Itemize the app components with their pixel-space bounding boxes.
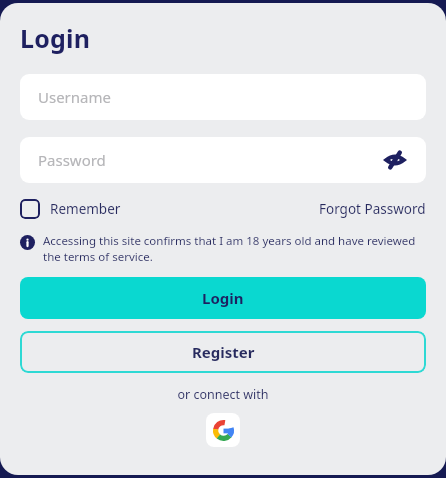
staticText: Login <box>20 21 91 55</box>
button[interactable]: Forgot Password <box>319 200 426 218</box>
button[interactable]: Register <box>20 331 426 373</box>
staticText: or connect with <box>20 386 426 403</box>
staticText: Login <box>202 288 244 308</box>
button[interactable]: Sign in with Google <box>206 413 240 447</box>
button[interactable]: Login <box>20 277 426 319</box>
staticText: Accessing this site confirms that I am 1… <box>43 233 426 264</box>
staticText: Username <box>38 87 111 107</box>
button[interactable]: Remember <box>20 199 121 219</box>
button[interactable]: Username <box>20 74 426 120</box>
staticText: Register <box>192 342 255 362</box>
staticText: Remember <box>50 200 121 218</box>
button[interactable]: Password <box>20 137 426 183</box>
staticText: Password <box>38 150 106 170</box>
staticText: Forgot Password <box>319 200 426 218</box>
button[interactable]: Show password <box>382 147 408 173</box>
